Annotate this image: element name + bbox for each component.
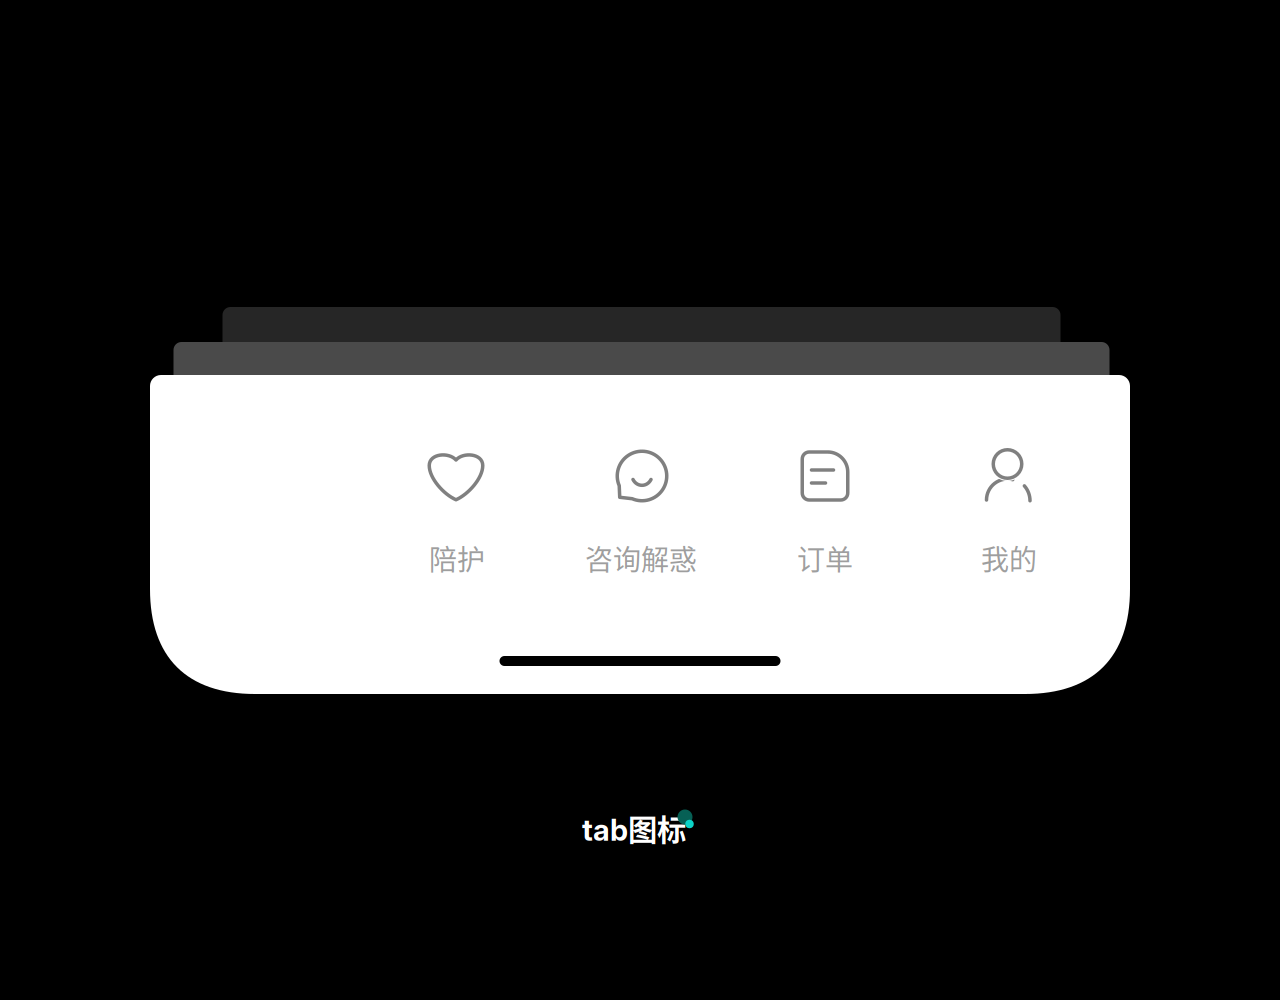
staticText: 陪护 <box>429 538 485 578</box>
button[interactable]: 订单 <box>733 434 917 594</box>
button[interactable]: 咨询解惑 <box>549 434 733 594</box>
staticText: 咨询解惑 <box>585 538 697 578</box>
button[interactable]: 陪护 <box>365 434 549 594</box>
staticText: 订单 <box>797 538 853 578</box>
staticText: 我的 <box>981 538 1037 578</box>
staticText: tab图标 <box>582 807 686 849</box>
button[interactable]: 我的 <box>917 434 1101 594</box>
